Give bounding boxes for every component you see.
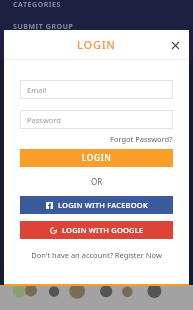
button[interactable]: Don't have an account? Register Now	[20, 250, 173, 260]
staticText: Email	[27, 85, 47, 95]
button[interactable]: LOGIN WITH FACEBOOK	[20, 196, 173, 214]
staticText: LOGIN	[77, 37, 116, 52]
staticText: OR	[91, 176, 103, 187]
button[interactable]: Email	[20, 80, 173, 99]
staticText: Password	[27, 115, 61, 125]
staticText: LOGIN	[82, 152, 112, 164]
staticText: Don't have an account? Register Now	[31, 250, 162, 260]
staticText: LOGIN WITH GOOGLE	[62, 225, 144, 235]
staticText: Forgot Password?	[110, 134, 173, 144]
staticText: LOGIN WITH FACEBOOK	[58, 200, 148, 210]
staticText: SUBMIT GROUP	[13, 22, 74, 32]
button[interactable]: Close	[166, 36, 184, 54]
button[interactable]: Forgot Password?	[110, 134, 173, 144]
button[interactable]: LOGIN WITH GOOGLE	[20, 221, 173, 239]
button[interactable]: LOGIN	[20, 149, 173, 167]
button[interactable]: Password	[20, 110, 173, 129]
staticText: CATEGORIES	[13, 0, 62, 10]
